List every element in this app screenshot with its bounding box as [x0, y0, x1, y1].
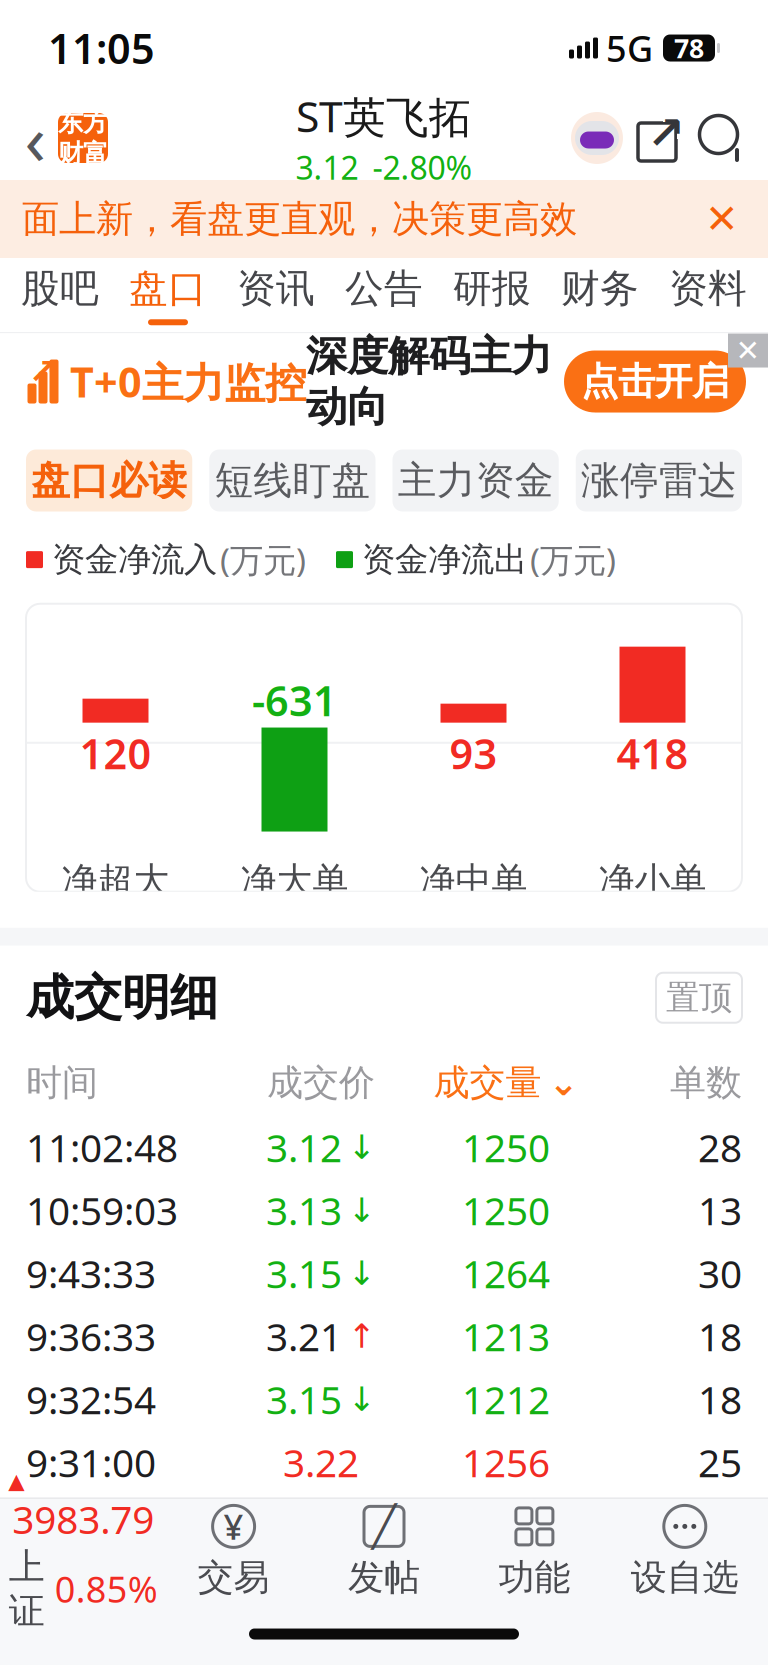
button[interactable]: 股吧	[6, 258, 114, 332]
button[interactable]: Close ad	[728, 333, 768, 367]
staticText: 资料	[669, 265, 747, 312]
staticText: -631	[252, 673, 337, 728]
staticText: ↓	[348, 1128, 376, 1166]
staticText: 涨停雷达	[581, 457, 737, 504]
staticText: 1264	[462, 1248, 550, 1299]
staticText: 3.12	[266, 1122, 342, 1173]
staticText: 功能	[498, 1555, 570, 1600]
staticText: 3.22	[283, 1437, 359, 1488]
button[interactable]: Share	[624, 111, 688, 165]
staticText: ✕	[705, 196, 739, 242]
staticText: 3.13	[266, 1185, 342, 1236]
button[interactable]: East Money home	[58, 113, 108, 163]
staticText: 18	[698, 1374, 742, 1425]
button[interactable]: 涨停雷达	[576, 449, 742, 511]
staticText: 资金净流出	[362, 539, 527, 580]
staticText: 30	[698, 1248, 742, 1299]
staticText: 1213	[462, 1311, 550, 1362]
staticText: 净中单	[419, 859, 527, 903]
staticText: 资讯	[237, 265, 315, 312]
staticText: ✕	[735, 334, 760, 367]
button[interactable]: Search	[688, 112, 768, 164]
staticText: 18	[698, 1311, 742, 1362]
button[interactable]: Back	[0, 113, 58, 163]
staticText: 研报	[453, 265, 531, 312]
staticText: 1250	[462, 1185, 550, 1236]
staticText: ↓	[348, 1254, 376, 1292]
staticText: 1256	[462, 1437, 550, 1488]
staticText: ╱	[372, 1504, 396, 1549]
staticText: 东方	[58, 107, 108, 138]
staticText: 9:31:00	[26, 1437, 156, 1488]
staticText: 短线盯盘	[214, 457, 370, 504]
button[interactable]: 资料	[654, 258, 762, 332]
staticText: -2.80%	[372, 146, 472, 189]
button[interactable]: ¥	[158, 1499, 309, 1603]
staticText: 9:32:54	[26, 1374, 156, 1425]
staticText: 交易	[198, 1555, 270, 1600]
button[interactable]: 盘口	[114, 258, 222, 332]
button[interactable]: Assistant	[570, 111, 624, 165]
staticText: 418	[616, 726, 688, 781]
staticText: 93	[449, 726, 497, 781]
staticText: 净超大	[61, 859, 169, 903]
staticText: 13	[698, 1185, 742, 1236]
button[interactable]: 盘口必读	[26, 449, 192, 511]
button[interactable]: 公告	[330, 258, 438, 332]
staticText: ↑	[348, 1317, 376, 1355]
staticText: 成交价	[267, 1061, 375, 1105]
staticText: ↗	[647, 107, 685, 159]
staticText: 盘口	[129, 265, 207, 312]
staticText: 点击开启	[581, 359, 729, 404]
staticText: 时间	[26, 1061, 98, 1105]
staticText: 面上新，看盘更直观，决策更高效	[22, 196, 577, 242]
staticText: 3983.79	[12, 1493, 154, 1544]
button[interactable]: 置顶	[656, 973, 742, 1023]
staticText: 3.21	[266, 1311, 342, 1362]
staticText: ¥	[224, 1503, 244, 1549]
staticText: 3.12	[295, 146, 358, 189]
staticText: 股吧	[21, 265, 99, 312]
button[interactable]: ╱	[309, 1499, 459, 1603]
button[interactable]: 面上新，看盘更直观，决策更高效	[0, 180, 768, 258]
staticText: ⌄	[548, 1062, 578, 1103]
button[interactable]: 资讯	[222, 258, 330, 332]
staticText: 0.85%	[55, 1565, 158, 1613]
staticText: 28	[698, 1122, 742, 1173]
staticText: 设自选	[631, 1555, 739, 1600]
staticText: 10:59:03	[26, 1185, 178, 1236]
staticText: ▲	[8, 1469, 24, 1493]
staticText: ↗	[28, 352, 57, 391]
staticText: 11:05	[48, 21, 155, 75]
button[interactable]: 点击开启	[564, 350, 746, 412]
staticText: 公告	[345, 265, 423, 312]
staticText: 9:36:33	[26, 1311, 156, 1362]
staticText: 资金净流入	[52, 539, 217, 580]
staticText: 25	[698, 1437, 742, 1488]
staticText: 上证	[9, 1545, 45, 1633]
button[interactable]: 财务	[546, 258, 654, 332]
staticText: 置顶	[666, 977, 732, 1018]
staticText: T+0主力监控	[70, 354, 306, 409]
staticText: 1212	[462, 1374, 550, 1425]
button[interactable]: ▲	[8, 1499, 158, 1603]
button[interactable]: 研报	[438, 258, 546, 332]
staticText: 120	[79, 726, 151, 781]
staticText: 发帖	[348, 1555, 420, 1600]
staticText: 3.15	[266, 1248, 342, 1299]
staticText: (万元)	[220, 537, 306, 582]
staticText: 财务	[561, 265, 639, 312]
button[interactable]: 短线盯盘	[209, 449, 375, 511]
staticText: 成交明细	[26, 968, 218, 1027]
button[interactable]: 设自选	[610, 1499, 760, 1603]
staticText: 净小单	[598, 859, 706, 903]
staticText: 盘口必读	[31, 457, 187, 504]
staticText: 3.15	[266, 1374, 342, 1425]
staticText: ‹	[24, 92, 45, 184]
staticText: ↓	[348, 1191, 376, 1229]
button[interactable]: 成交量	[416, 1061, 596, 1105]
staticText: 1250	[462, 1122, 550, 1173]
staticText: 财富	[58, 138, 108, 169]
button[interactable]: 功能	[459, 1499, 610, 1603]
button[interactable]: 主力资金	[392, 449, 559, 511]
